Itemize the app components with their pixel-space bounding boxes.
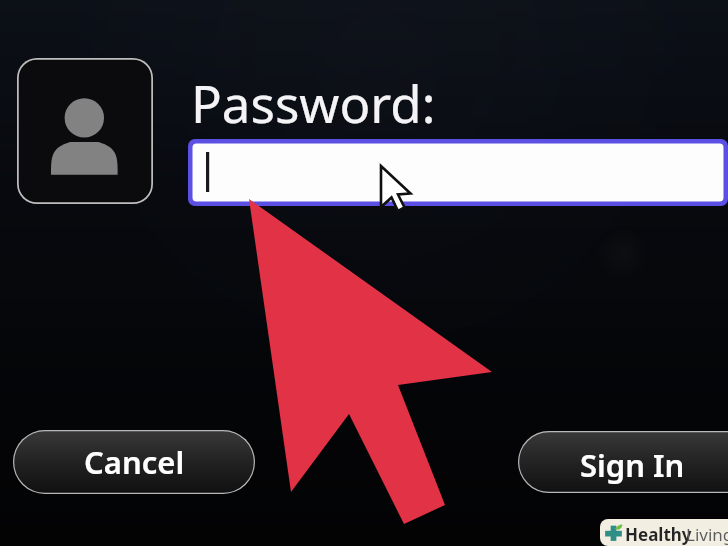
staticText: Living	[686, 523, 728, 546]
staticText: Healthy	[625, 523, 692, 546]
button[interactable]: Cancel	[13, 430, 255, 494]
button[interactable]: Sign In	[518, 431, 728, 493]
button[interactable]	[188, 139, 728, 206]
staticText: Sign In	[580, 444, 685, 486]
button[interactable]: User account picture	[17, 58, 153, 204]
staticText: Cancel	[84, 441, 185, 483]
staticText: Password:	[191, 68, 436, 137]
